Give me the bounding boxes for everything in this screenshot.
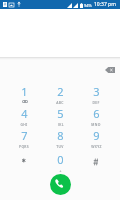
- staticText: ABC: [56, 100, 64, 104]
- button[interactable]: 9: [78, 126, 114, 150]
- staticText: DEF: [92, 100, 100, 104]
- staticText: TUV: [56, 144, 64, 149]
- button[interactable]: [78, 150, 114, 172]
- button[interactable]: 0: [42, 150, 78, 172]
- staticText: 5: [57, 106, 64, 121]
- staticText: JKL: [58, 122, 64, 126]
- button[interactable]: 1: [6, 82, 42, 104]
- staticText: +: [59, 168, 62, 172]
- staticText: 8: [57, 128, 64, 143]
- staticText: 3: [93, 84, 100, 99]
- button[interactable]: 6: [78, 104, 114, 126]
- staticText: GHI: [20, 122, 28, 126]
- staticText: 9: [93, 128, 100, 143]
- button[interactable]: 5: [42, 104, 78, 126]
- button[interactable]: 8: [42, 126, 78, 150]
- staticText: 4: [21, 106, 28, 121]
- staticText: 6: [93, 106, 100, 121]
- button[interactable]: 3: [78, 82, 114, 104]
- button[interactable]: 7: [6, 126, 42, 150]
- button[interactable]: Backspace: [100, 62, 120, 78]
- staticText: WXYZ: [91, 144, 102, 149]
- staticText: 0: [57, 152, 64, 167]
- staticText: 94%: [84, 3, 92, 8]
- button[interactable]: 2: [42, 82, 78, 104]
- staticText: PQRS: [19, 144, 29, 149]
- staticText: 10:37 pm: [94, 1, 116, 8]
- staticText: 2: [57, 84, 64, 99]
- button[interactable]: 4: [6, 104, 42, 126]
- button[interactable]: [0, 0, 120, 57]
- button[interactable]: Call: [50, 174, 71, 195]
- button[interactable]: [6, 150, 42, 172]
- staticText: MNO: [91, 122, 101, 126]
- staticText: 7: [21, 128, 28, 143]
- staticText: 1: [21, 84, 28, 99]
